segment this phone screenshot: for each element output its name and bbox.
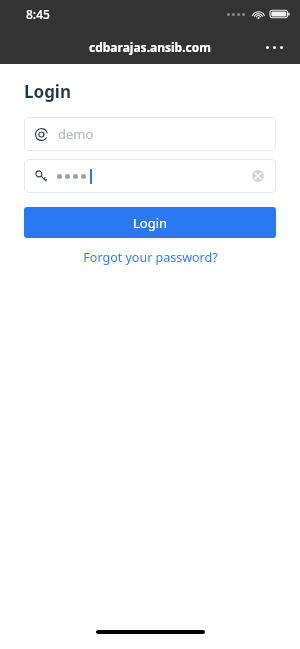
staticText: 8:45: [26, 6, 50, 22]
staticText: Forgot your password?: [83, 249, 218, 266]
staticText: demo: [58, 125, 94, 143]
staticText: cdbarajas.ansib.com: [89, 39, 211, 55]
button[interactable]: Forgot your password?: [24, 249, 276, 266]
button[interactable]: Login: [24, 207, 276, 238]
button[interactable]: Clear password: [24, 159, 276, 193]
button[interactable]: demo: [24, 117, 276, 151]
staticText: Login: [24, 80, 72, 103]
staticText: Login: [133, 214, 168, 232]
button[interactable]: Clear password: [251, 169, 265, 183]
button[interactable]: More options: [256, 36, 292, 58]
